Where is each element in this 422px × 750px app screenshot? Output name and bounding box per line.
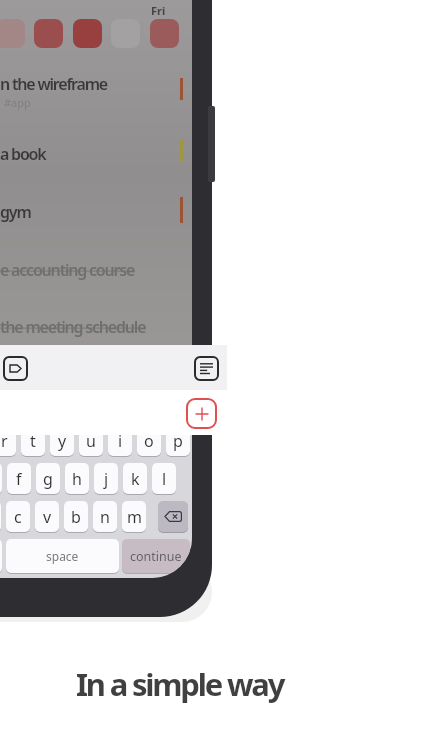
- staticText: n: [100, 506, 110, 528]
- button[interactable]: [0, 539, 2, 573]
- button[interactable]: [73, 19, 102, 48]
- staticText: f: [16, 468, 22, 490]
- staticText: e accounting course: [0, 259, 135, 281]
- button[interactable]: [0, 19, 25, 48]
- staticText: a book: [0, 143, 46, 165]
- button[interactable]: r: [0, 425, 16, 456]
- staticText: space: [46, 548, 79, 564]
- staticText: Fri: [151, 3, 166, 18]
- button[interactable]: l: [152, 463, 176, 494]
- button[interactable]: x: [0, 501, 1, 532]
- staticText: gym: [0, 201, 31, 223]
- button[interactable]: t: [21, 425, 45, 456]
- staticText: i: [118, 430, 123, 452]
- button[interactable]: k: [123, 463, 147, 494]
- button[interactable]: j: [94, 463, 118, 494]
- staticText: continue: [130, 548, 182, 565]
- button[interactable]: o: [137, 425, 161, 456]
- staticText: j: [104, 468, 109, 490]
- staticText: g: [43, 468, 53, 490]
- button[interactable]: d: [0, 463, 2, 494]
- button[interactable]: v: [35, 501, 59, 532]
- button[interactable]: b: [64, 501, 88, 532]
- button[interactable]: [158, 501, 188, 532]
- staticText: m: [127, 506, 142, 528]
- button[interactable]: c: [6, 501, 30, 532]
- staticText: v: [43, 506, 52, 528]
- button[interactable]: y: [50, 425, 74, 456]
- staticText: k: [131, 468, 140, 490]
- button[interactable]: [34, 19, 63, 48]
- staticText: c: [14, 506, 22, 528]
- staticText: h: [72, 468, 82, 490]
- button[interactable]: p: [166, 425, 190, 456]
- button[interactable]: u: [79, 425, 103, 456]
- button[interactable]: i: [108, 425, 132, 456]
- staticText: t: [30, 430, 36, 452]
- button[interactable]: m: [122, 501, 146, 532]
- staticText: #app: [4, 95, 31, 110]
- staticText: l: [162, 468, 167, 490]
- button[interactable]: g: [36, 463, 60, 494]
- button[interactable]: f: [7, 463, 31, 494]
- staticText: b: [71, 506, 81, 528]
- staticText: o: [144, 430, 154, 452]
- staticText: y: [58, 430, 67, 452]
- button[interactable]: space: [6, 539, 119, 573]
- staticText: In a simple way: [76, 663, 284, 705]
- staticText: p: [173, 430, 183, 452]
- button[interactable]: n: [93, 501, 117, 532]
- button[interactable]: h: [65, 463, 89, 494]
- staticText: the meeting schedule: [0, 316, 146, 338]
- button[interactable]: [3, 356, 28, 381]
- button[interactable]: continue: [122, 539, 190, 573]
- button[interactable]: [194, 356, 219, 381]
- staticText: r: [1, 430, 8, 452]
- staticText: n the wireframe: [0, 73, 108, 95]
- staticText: u: [86, 430, 96, 452]
- button[interactable]: [186, 398, 217, 429]
- button[interactable]: [150, 19, 179, 48]
